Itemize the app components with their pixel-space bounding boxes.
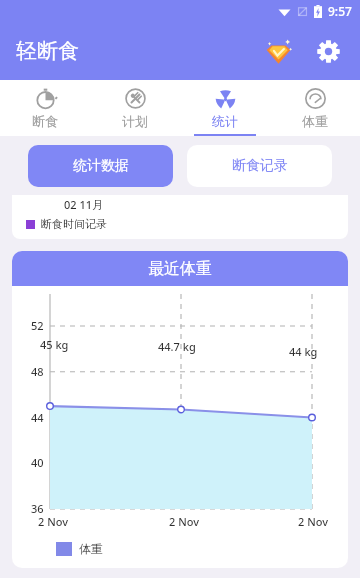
staticText: 轻断食 [16,38,79,64]
button[interactable]: 统计 [180,80,270,136]
staticText: 48 [31,364,44,379]
staticText: 统计数据 [73,157,129,175]
staticText: 40 [31,455,44,470]
staticText: 02 11月 [64,197,104,212]
staticText: 体重 [302,113,328,129]
staticText: 断食记录 [232,157,288,175]
staticText: 2 Nov [169,514,199,529]
staticText: 9:57 [328,3,352,19]
staticText: 体重 [79,541,103,556]
staticText: 52 [31,318,44,333]
staticText: 2 Nov [38,514,68,529]
staticText: 44 [31,410,44,425]
staticText: 45 kg [40,337,69,352]
staticText: 最近体重 [148,259,212,279]
staticText: 2 Nov [298,514,328,529]
button[interactable]: 计划 [90,80,180,136]
staticText: 断食时间记录 [41,217,107,231]
staticText: 36 [31,501,44,516]
button[interactable]: 断食记录 [187,145,332,187]
staticText: 44 kg [289,344,318,359]
staticText: 44.7 kg [158,339,196,354]
staticText: 统计 [212,113,238,129]
button[interactable]: 02 11月 [12,195,348,239]
button[interactable]: Settings [310,33,346,69]
button[interactable]: 体重 [270,80,360,136]
button[interactable]: Premium [260,33,296,69]
staticText: 断食 [32,113,58,129]
staticText: 计划 [122,113,148,129]
button[interactable]: 统计数据 [28,145,173,187]
button[interactable]: 断食 [0,80,90,136]
